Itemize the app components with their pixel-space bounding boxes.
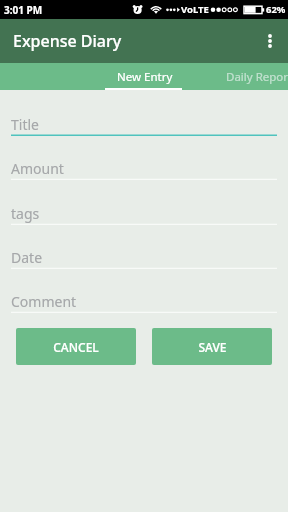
staticText: VoLTE [181,3,209,16]
staticText: Comment [11,292,77,311]
button[interactable]: CANCEL [16,328,136,365]
staticText: Title [11,115,39,134]
button[interactable]: Daily Report [220,63,288,90]
staticText: 3:01 PM [4,3,43,17]
staticText: Amount [11,159,64,178]
button[interactable]: Date [0,240,288,268]
staticText: Date [11,248,43,267]
button[interactable]: More options [252,23,288,59]
staticText: tags [11,204,40,223]
button[interactable]: Title [0,107,288,135]
staticText: 62% [266,3,286,16]
staticText: SAVE [198,339,227,355]
button[interactable]: SAVE [152,328,272,365]
staticText: Daily Report [226,69,288,85]
button[interactable]: Amount [0,151,288,179]
button[interactable]: New Entry [106,63,183,90]
staticText: Expense Diary [13,30,122,52]
staticText: New Entry [117,69,173,85]
button[interactable]: tags [0,196,288,224]
staticText: CANCEL [53,339,99,355]
button[interactable]: Comment [0,284,288,312]
